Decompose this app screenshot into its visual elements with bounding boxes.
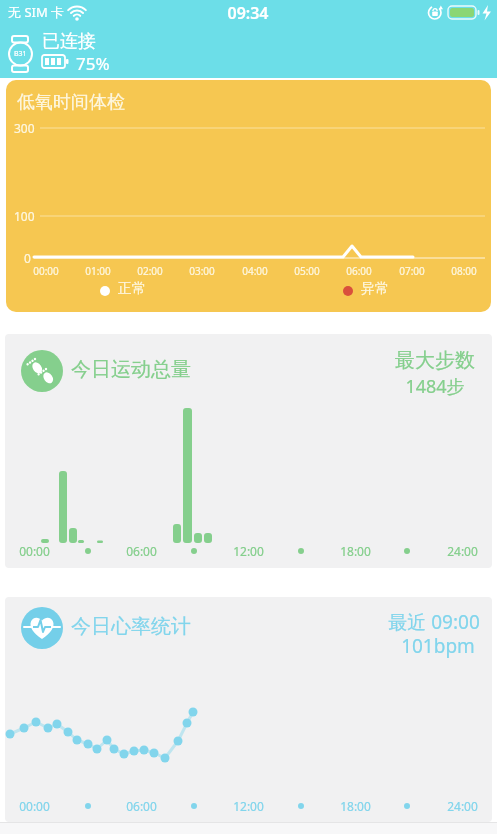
staticText: 07:00 <box>399 264 425 278</box>
staticText: 今日运动总量 <box>71 357 191 382</box>
staticText: 75% <box>76 52 110 75</box>
staticText: 101bpm <box>401 633 475 659</box>
staticText: 09:34 <box>227 2 269 24</box>
staticText: 已连接 <box>42 30 96 53</box>
staticText: 正常 <box>118 280 146 298</box>
staticText: 02:00 <box>137 264 163 278</box>
staticText: 18:00 <box>340 543 371 559</box>
staticText: 06:00 <box>126 798 157 814</box>
staticText: 1484步 <box>405 374 465 399</box>
staticText: 00:00 <box>33 264 59 278</box>
staticText: 12:00 <box>233 543 264 559</box>
staticText: 00:00 <box>19 798 50 814</box>
staticText: 最大步数 <box>395 348 475 373</box>
button[interactable]: 低氧时间体检 <box>6 80 491 312</box>
staticText: 24:00 <box>447 543 478 559</box>
staticText: 24:00 <box>447 798 478 814</box>
staticText: 06:00 <box>126 543 157 559</box>
staticText: 00:00 <box>19 543 50 559</box>
staticText: 18:00 <box>340 798 371 814</box>
staticText: 低氧时间体检 <box>17 91 125 114</box>
staticText: 05:00 <box>294 264 320 278</box>
staticText: 06:00 <box>346 264 372 278</box>
staticText: 100 <box>14 208 35 224</box>
staticText: 04:00 <box>242 264 268 278</box>
staticText: 最近 09:00 <box>388 609 480 635</box>
staticText: 300 <box>14 120 35 136</box>
staticText: 03:00 <box>189 264 215 278</box>
staticText: 无 SIM 卡 <box>8 3 65 21</box>
staticText: B31 <box>14 49 27 59</box>
button[interactable]: 今日运动总量 <box>5 334 492 568</box>
staticText: 今日心率统计 <box>71 614 191 639</box>
staticText: 12:00 <box>233 798 264 814</box>
button[interactable]: 无 SIM 卡 <box>0 0 497 78</box>
staticText: 0 <box>24 250 31 266</box>
button[interactable]: 今日心率统计 <box>5 597 492 822</box>
staticText: 异常 <box>361 280 389 298</box>
staticText: 08:00 <box>451 264 477 278</box>
staticText: 01:00 <box>85 264 111 278</box>
